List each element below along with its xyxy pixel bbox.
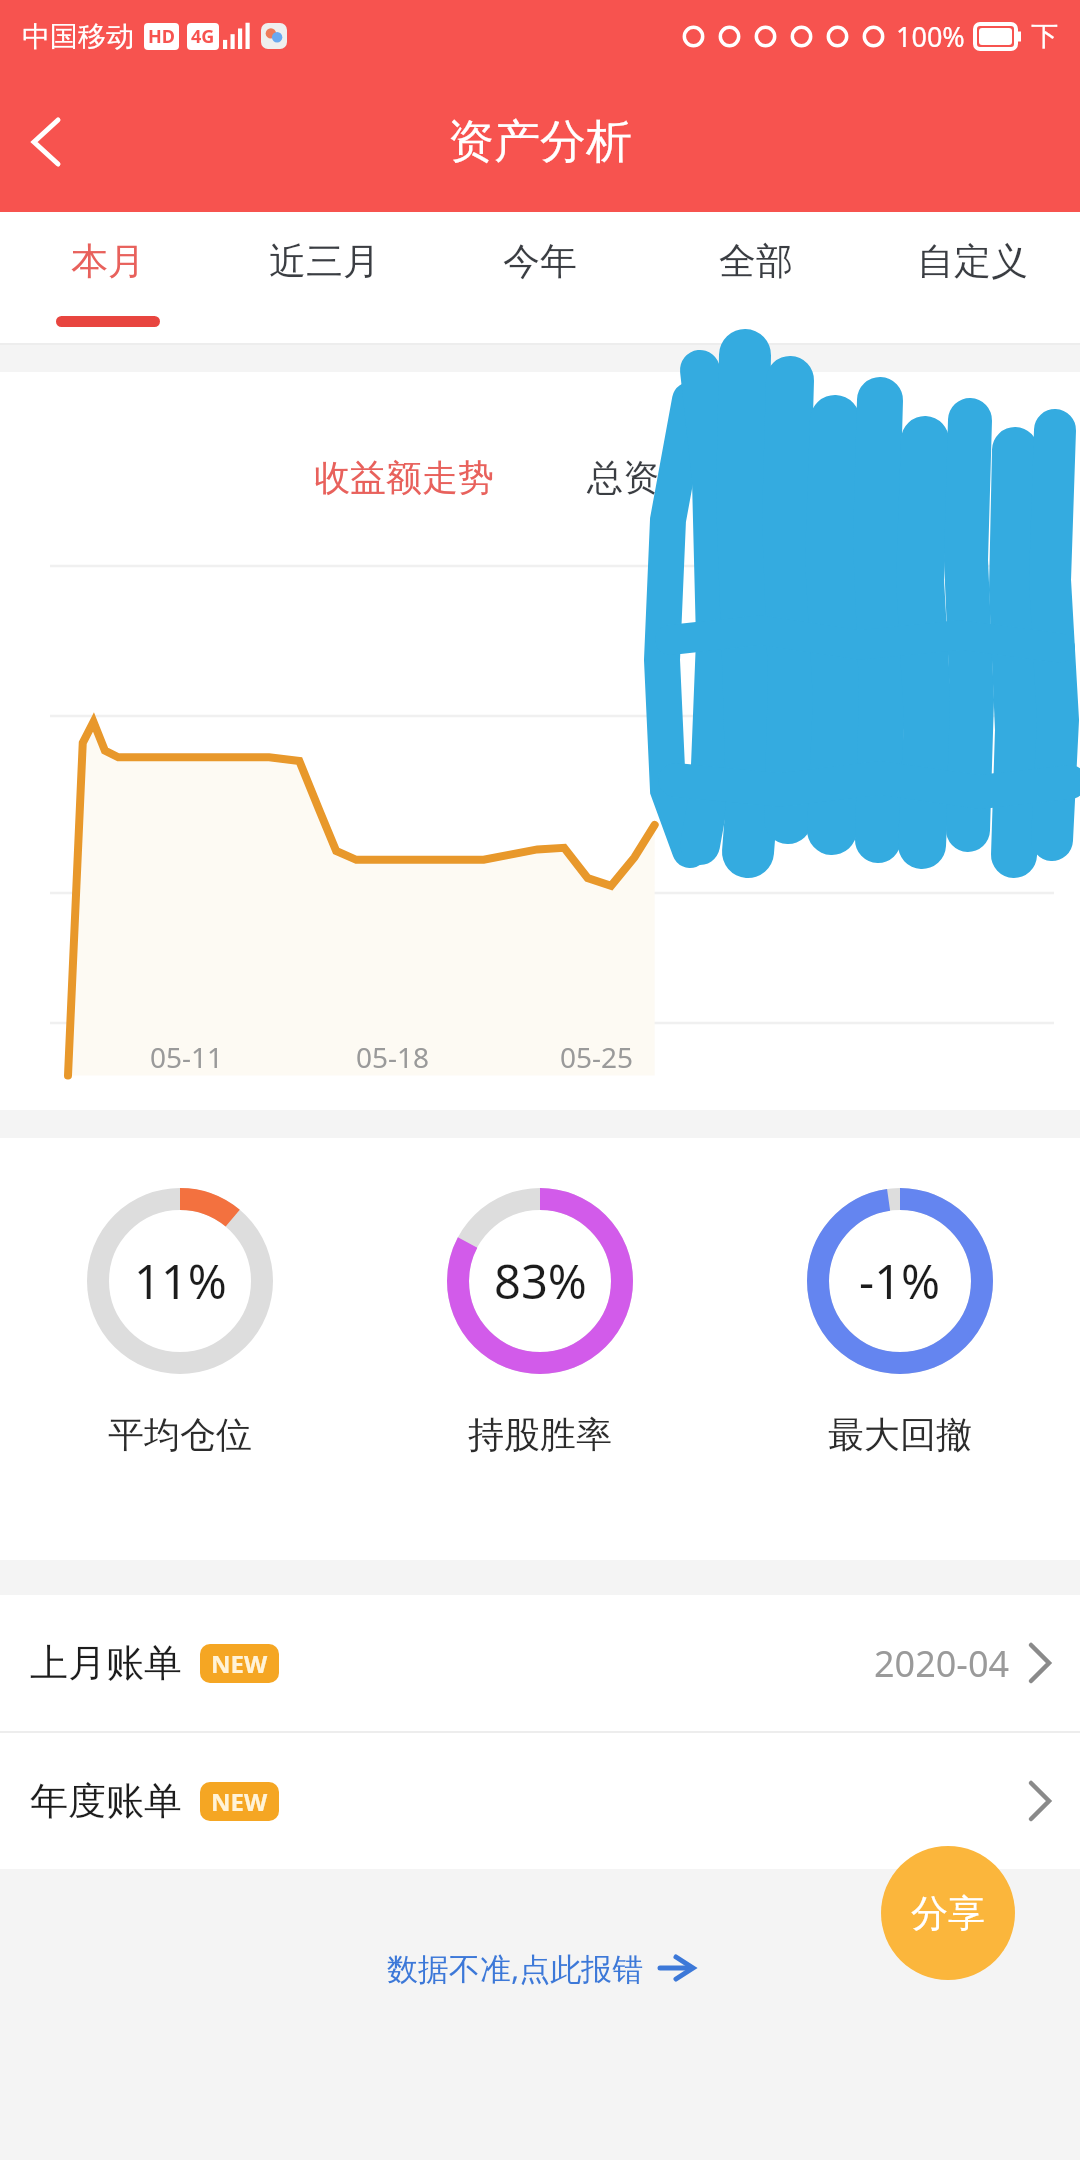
staticText: 全部	[719, 238, 793, 285]
staticText: 2020-04	[874, 1639, 1010, 1688]
staticText: 4G	[191, 24, 215, 49]
staticText: 资产分析	[448, 113, 632, 171]
button[interactable]: 近三月	[216, 212, 432, 345]
button[interactable]: 本月	[0, 212, 216, 345]
staticText: 05-11	[150, 1038, 224, 1076]
staticText: 83%	[494, 1249, 587, 1313]
staticText: -1%	[859, 1249, 941, 1313]
button[interactable]: 分享	[881, 1846, 1015, 1980]
staticText: 05-18	[356, 1038, 430, 1076]
staticText: 05-25	[560, 1038, 634, 1076]
staticText: 11%	[134, 1249, 227, 1313]
staticText: 中国移动	[22, 19, 134, 54]
staticText: 平均仓位	[108, 1412, 252, 1457]
staticText: 持股胜率	[468, 1412, 612, 1457]
button[interactable]: -1%	[720, 1138, 1080, 1560]
staticText: 100%	[896, 18, 965, 55]
staticText: 下	[1031, 19, 1058, 53]
staticText: 今年	[503, 238, 577, 285]
staticText: 上月账单	[30, 1639, 182, 1687]
button[interactable]: 数据不准,点此报错	[377, 1941, 704, 1995]
staticText: 自定义	[917, 238, 1028, 285]
button[interactable]: 年度账单	[0, 1733, 1080, 1869]
staticText: NEW	[211, 1647, 268, 1680]
staticText: 年度账单	[30, 1777, 182, 1825]
button[interactable]: 总资产走势	[541, 429, 813, 526]
staticText: 近三月	[269, 238, 380, 285]
button[interactable]: 自定义	[864, 212, 1080, 345]
staticText: 本月	[71, 238, 145, 285]
staticText: 总资产走势	[587, 455, 767, 500]
button[interactable]: Back	[0, 97, 90, 187]
staticText: 最大回撤	[828, 1412, 972, 1457]
staticText: 收益额走势	[314, 455, 494, 500]
button[interactable]: 83%	[360, 1138, 720, 1560]
button[interactable]: 11%	[0, 1138, 360, 1560]
staticText: 数据不准,点此报错	[387, 1947, 644, 1989]
staticText: HD	[148, 24, 175, 49]
button[interactable]: 全部	[648, 212, 864, 345]
button[interactable]: 上月账单	[0, 1595, 1080, 1731]
staticText: NEW	[211, 1785, 268, 1818]
staticText: 分享	[911, 1890, 985, 1937]
button[interactable]: 今年	[432, 212, 648, 345]
button[interactable]: 收益额走势	[267, 429, 541, 526]
